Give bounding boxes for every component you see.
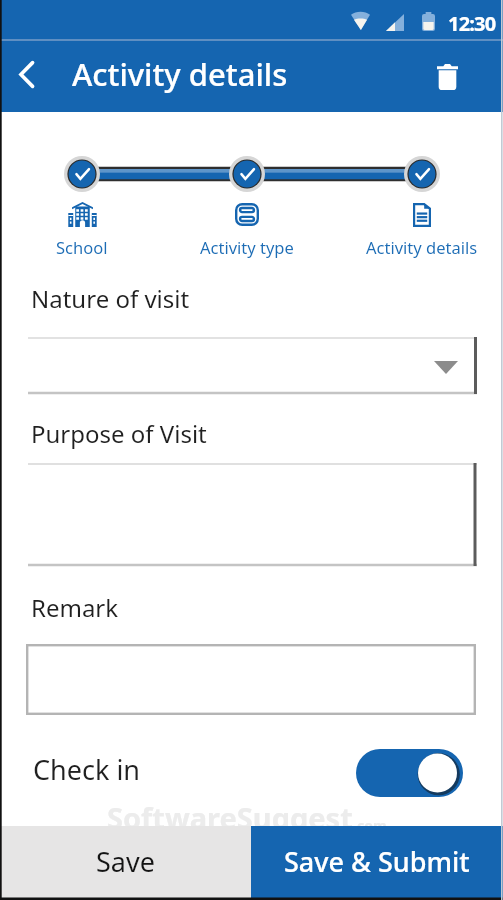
staticText: Nature of visit (31, 282, 190, 315)
button[interactable]: Save (0, 826, 251, 900)
button[interactable]: Check in toggle (356, 749, 463, 797)
button[interactable]: Back (0, 47, 54, 101)
staticText: SoftwareSuggest (107, 798, 353, 837)
staticText: Activity type (200, 236, 294, 258)
button[interactable]: Nature of visit dropdown (28, 337, 477, 394)
button[interactable]: Activity details (332, 156, 503, 258)
staticText: Activity details (366, 236, 478, 258)
button[interactable] (28, 463, 477, 566)
button[interactable]: Delete (419, 49, 475, 105)
button[interactable]: Save & Submit (251, 826, 503, 900)
staticText: School (56, 236, 108, 258)
button[interactable]: Activity type (157, 156, 337, 258)
button[interactable] (26, 644, 476, 715)
staticText: Remark (31, 591, 119, 624)
staticText: Activity details (72, 53, 288, 95)
staticText: Save (96, 843, 155, 880)
staticText: 12:30 (448, 10, 496, 37)
staticText: Save & Submit (284, 843, 470, 880)
staticText: Check in (33, 751, 141, 788)
button[interactable]: School (0, 156, 172, 258)
staticText: .com (353, 816, 387, 835)
staticText: Purpose of Visit (31, 417, 207, 450)
